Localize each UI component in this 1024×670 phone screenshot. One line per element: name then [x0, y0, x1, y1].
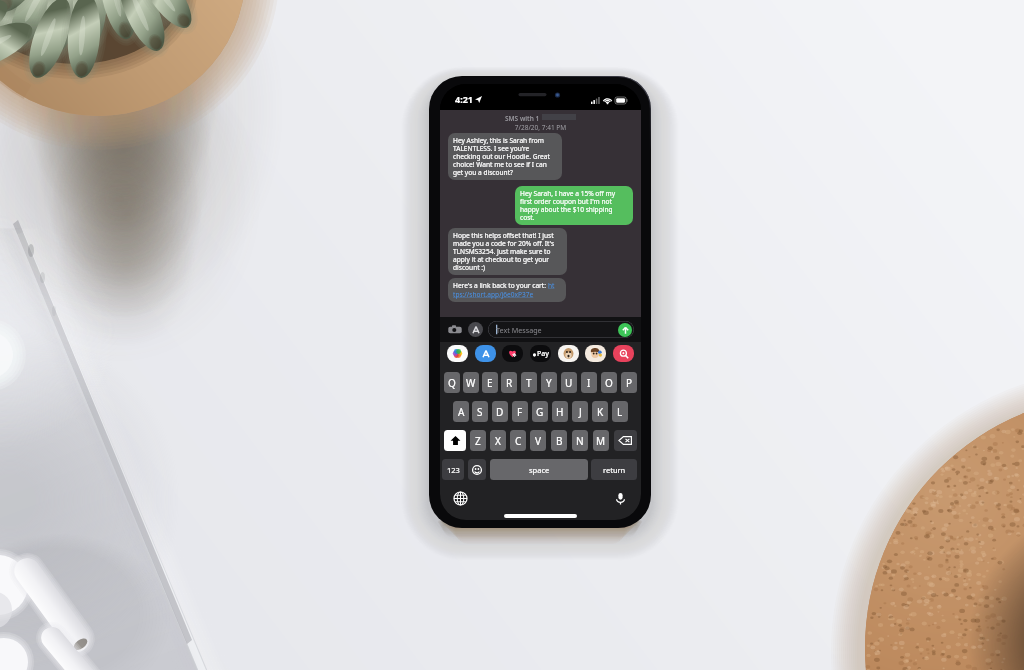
staticText: space	[529, 465, 550, 475]
staticText: P	[626, 376, 633, 390]
staticText: O	[605, 376, 613, 390]
button[interactable]: P	[621, 372, 637, 393]
staticText: K	[597, 405, 604, 419]
button[interactable]: Hope this helps offset that! I just made…	[448, 228, 567, 275]
staticText: V	[535, 434, 541, 448]
staticText: Here's a link back to your cart:	[453, 281, 548, 290]
button[interactable]: 123	[442, 459, 464, 480]
button[interactable]: T	[521, 372, 537, 393]
button[interactable]: J	[572, 401, 588, 422]
staticText: Text Message	[496, 325, 542, 335]
staticText: W	[466, 376, 476, 390]
button[interactable]: return	[591, 459, 637, 480]
button[interactable]: App Store	[468, 322, 483, 337]
button[interactable]: I	[581, 372, 597, 393]
staticText: ht	[548, 281, 555, 290]
staticText: tps://short.app/j6e0xP37e	[453, 290, 534, 299]
button[interactable]: L	[612, 401, 628, 422]
staticText: Hope this helps offset that! I just made…	[453, 231, 562, 272]
staticText: 123	[447, 465, 460, 475]
button[interactable]: App 1	[447, 345, 468, 362]
button[interactable]: App 5	[558, 345, 579, 362]
staticText: return	[603, 465, 626, 475]
staticText: Q	[448, 376, 456, 390]
button[interactable]: App 3	[502, 345, 523, 362]
button[interactable]: M	[593, 430, 609, 451]
button[interactable]: X	[490, 430, 506, 451]
button[interactable]: S	[472, 401, 488, 422]
button[interactable]: App 7	[613, 345, 634, 362]
staticText: Y	[546, 376, 552, 390]
button[interactable]: Change keyboard language	[453, 491, 468, 506]
button[interactable]: Shift	[444, 430, 466, 451]
button[interactable]: V	[530, 430, 546, 451]
staticText: J	[579, 405, 582, 419]
staticText: I	[587, 376, 591, 390]
staticText: Hey Ashley, this is Sarah from TALENTLES…	[453, 136, 557, 177]
button[interactable]: Camera	[447, 322, 463, 338]
button[interactable]: Here's a link back to your cart:	[448, 278, 566, 302]
button[interactable]: G	[532, 401, 548, 422]
button[interactable]: N	[572, 430, 588, 451]
staticText: Hey Sarah, I have a 15% off my first ord…	[520, 189, 628, 222]
button[interactable]: A	[453, 401, 469, 422]
staticText: T	[526, 376, 532, 390]
button[interactable]: C	[510, 430, 526, 451]
button[interactable]: Send	[618, 323, 632, 337]
staticText: L	[617, 405, 623, 419]
button[interactable]: Hey Sarah, I have a 15% off my first ord…	[515, 186, 633, 225]
staticText: E	[487, 376, 493, 390]
staticText: 7/28/20, 7:41 PM	[448, 123, 633, 132]
staticText: S	[477, 405, 483, 419]
button[interactable]: Backspace	[614, 430, 637, 451]
button[interactable]: H	[552, 401, 568, 422]
staticText: SMS with 1	[505, 114, 540, 123]
button[interactable]: O	[601, 372, 617, 393]
button[interactable]: W	[463, 372, 479, 393]
staticText: H	[556, 405, 564, 419]
staticText: M	[596, 434, 606, 448]
button[interactable]: F	[512, 401, 528, 422]
button[interactable]: R	[501, 372, 517, 393]
button[interactable]: Hey Ashley, this is Sarah from TALENTLES…	[448, 133, 562, 180]
staticText: G	[536, 405, 544, 419]
staticText: C	[515, 434, 522, 448]
staticText: D	[496, 405, 504, 419]
staticText: U	[565, 376, 573, 390]
button[interactable]: D	[492, 401, 508, 422]
staticText: F	[517, 405, 523, 419]
button[interactable]: Z	[470, 430, 486, 451]
button[interactable]: B	[551, 430, 567, 451]
button[interactable]: App 6	[585, 345, 606, 362]
staticText: R	[506, 376, 513, 390]
staticText: Pay	[537, 349, 549, 359]
staticText: 4:21	[455, 93, 473, 105]
staticText: Z	[475, 434, 481, 448]
button[interactable]: Dictation	[613, 491, 628, 506]
staticText: A	[458, 405, 465, 419]
button[interactable]: Y	[541, 372, 557, 393]
button[interactable]: Emoji	[468, 459, 486, 480]
button[interactable]: Text Message	[488, 321, 634, 338]
button[interactable]: space	[490, 459, 588, 480]
button[interactable]: E	[482, 372, 498, 393]
staticText: N	[576, 434, 584, 448]
staticText: B	[556, 434, 563, 448]
button[interactable]: Q	[444, 372, 460, 393]
button[interactable]: App 4	[530, 345, 551, 362]
staticText: X	[495, 434, 501, 448]
button[interactable]: U	[561, 372, 577, 393]
button[interactable]: App 2	[475, 345, 496, 362]
button[interactable]: K	[592, 401, 608, 422]
